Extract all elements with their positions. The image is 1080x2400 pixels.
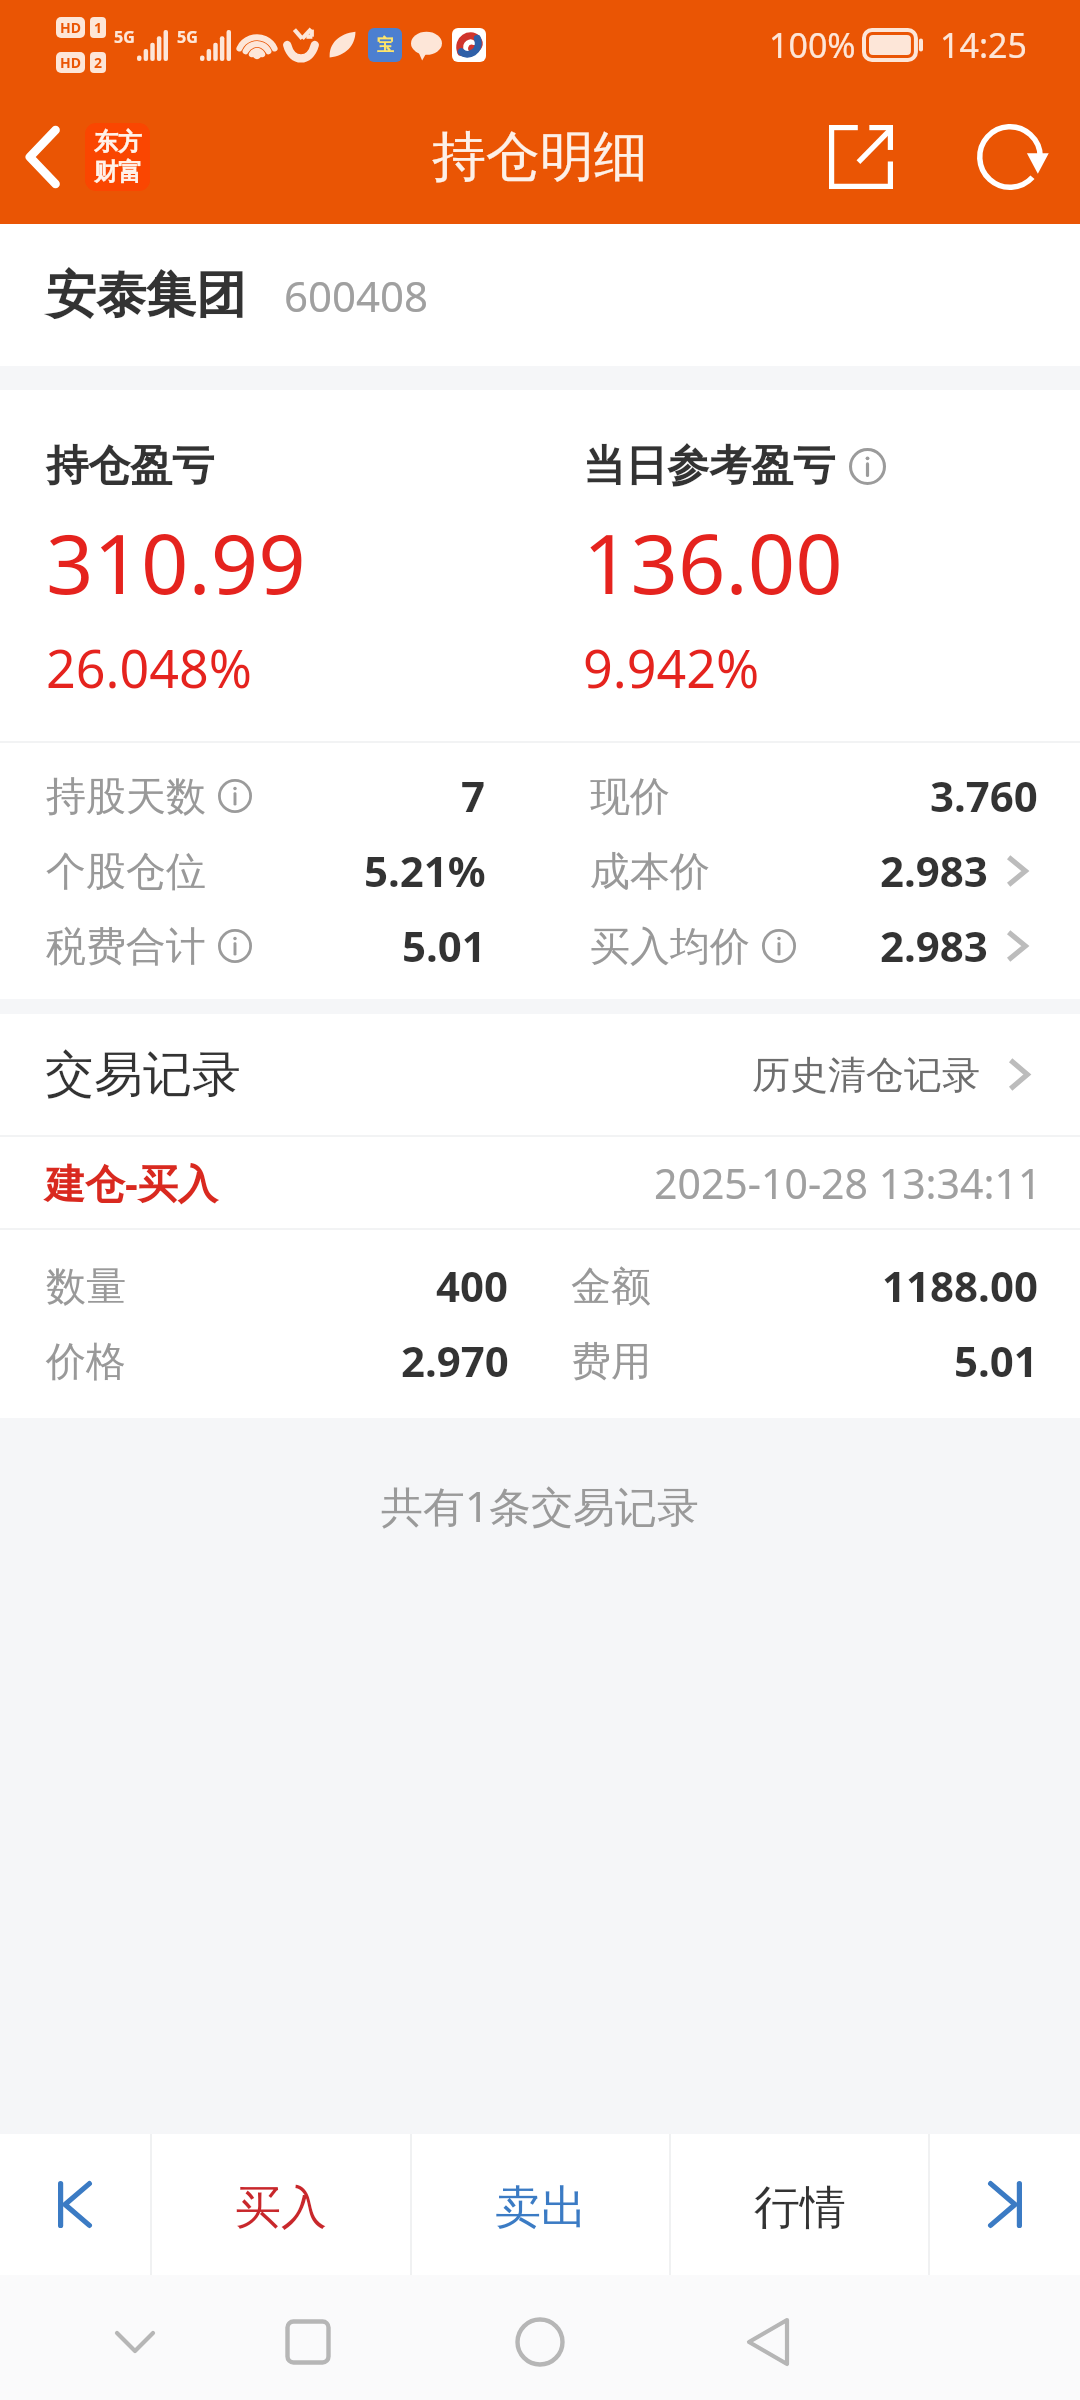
staticText: 26.048%: [46, 632, 252, 703]
staticText: 5.01: [954, 1332, 1038, 1389]
staticText: 财富: [94, 157, 142, 187]
staticText: 持仓盈亏: [46, 440, 214, 493]
staticText: 5.21%: [364, 842, 486, 899]
button[interactable]: Back: [708, 2282, 828, 2400]
staticText: 金额: [571, 1261, 651, 1311]
staticText: 安泰集团: [46, 264, 246, 327]
button[interactable]: Home: [480, 2282, 600, 2400]
button[interactable]: Refresh: [959, 102, 1069, 212]
staticText: 100%: [769, 22, 856, 68]
staticText: 2.970: [401, 1332, 509, 1389]
staticText: 数量: [46, 1261, 126, 1311]
staticText: 5.01: [402, 917, 486, 974]
button[interactable]: Share: [806, 102, 916, 212]
button[interactable]: 买入: [152, 2134, 410, 2275]
staticText: 7: [461, 767, 486, 824]
button[interactable]: Next stock: [930, 2134, 1080, 2275]
staticText: 价格: [46, 1336, 126, 1386]
staticText: 历史清仓记录: [752, 1051, 980, 1099]
staticText: 2.983: [880, 842, 988, 899]
staticText: 共有1条交易记录: [381, 1477, 700, 1534]
button[interactable]: Hide keyboard: [75, 2282, 195, 2400]
staticText: 建仓-买入: [45, 1155, 218, 1210]
staticText: 3.760: [930, 767, 1038, 824]
staticText: 东方: [94, 127, 142, 157]
staticText: 400: [436, 1257, 509, 1314]
staticText: 税费合计: [46, 921, 206, 971]
button[interactable]: 卖出: [412, 2134, 669, 2275]
button[interactable]: 安泰集团: [46, 224, 1080, 366]
staticText: 个股仓位: [46, 846, 206, 896]
staticText: 交易记录: [45, 1044, 241, 1106]
staticText: 600408: [284, 267, 429, 324]
staticText: 1: [94, 18, 103, 37]
staticText: 行情: [754, 2179, 846, 2237]
button[interactable]: 交易记录: [45, 1014, 1030, 1135]
staticText: 当日参考盈亏: [583, 440, 835, 493]
staticText: 买入: [235, 2179, 327, 2237]
staticText: HD: [60, 53, 81, 72]
button[interactable]: 买入均价: [486, 908, 1080, 983]
button[interactable]: Previous stock: [0, 2134, 150, 2275]
staticText: 费用: [571, 1336, 651, 1386]
button[interactable]: Back: [0, 90, 86, 224]
staticText: HD: [60, 18, 81, 37]
staticText: 136.00: [583, 505, 843, 618]
staticText: 买入均价: [590, 921, 750, 971]
staticText: 310.99: [46, 505, 306, 618]
button[interactable]: 成本价: [486, 833, 1080, 908]
staticText: 1188.00: [882, 1257, 1038, 1314]
staticText: 宝: [377, 35, 394, 56]
staticText: 持股天数: [46, 771, 206, 821]
staticText: 2025-10-28 13:34:11: [654, 1155, 1042, 1211]
staticText: 2: [94, 53, 103, 72]
staticText: 卖出: [495, 2179, 587, 2237]
staticText: 5G: [114, 26, 135, 48]
staticText: 2.983: [880, 917, 988, 974]
button[interactable]: Recents: [248, 2282, 368, 2400]
button[interactable]: 行情: [671, 2134, 928, 2275]
staticText: 现价: [590, 771, 670, 821]
staticText: 5G: [177, 26, 198, 48]
staticText: 9.942%: [583, 632, 760, 703]
staticText: 成本价: [590, 846, 710, 896]
staticText: 持仓明细: [432, 123, 648, 191]
staticText: 14:25: [940, 22, 1027, 68]
